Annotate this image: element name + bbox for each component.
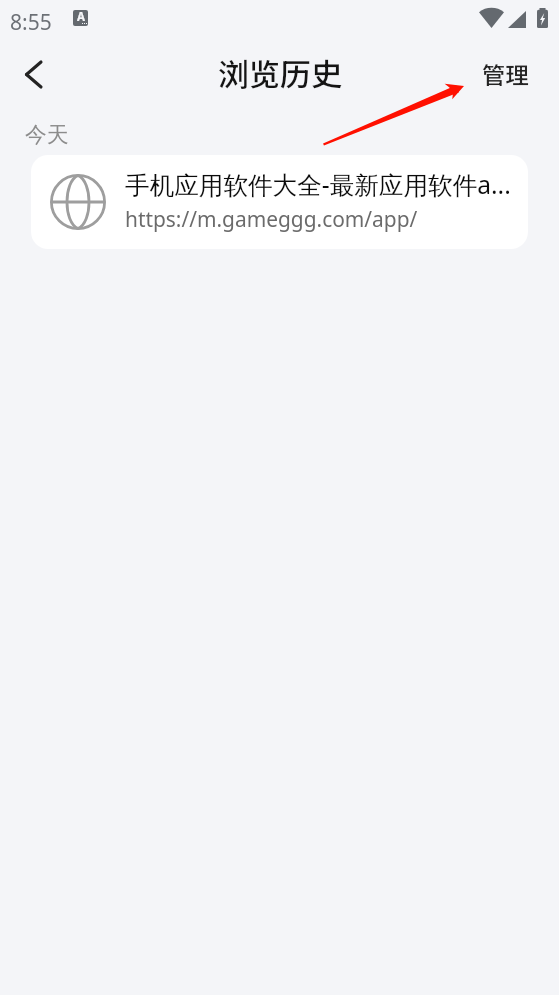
button[interactable]: 管理 [471,49,540,99]
staticText: A [77,10,85,25]
staticText: 浏览历史 [218,50,342,95]
staticText: 今天 [25,121,69,148]
staticText: 8:55 [10,8,52,37]
staticText: 手机应用软件大全-最新应用软件a... [125,168,511,202]
staticText: 管理 [482,57,529,91]
staticText: https://m.gameggg.com/app/ [125,205,418,233]
button[interactable]: Back [11,52,55,96]
button[interactable]: 手机应用软件大全-最新应用软件a... [31,155,528,249]
